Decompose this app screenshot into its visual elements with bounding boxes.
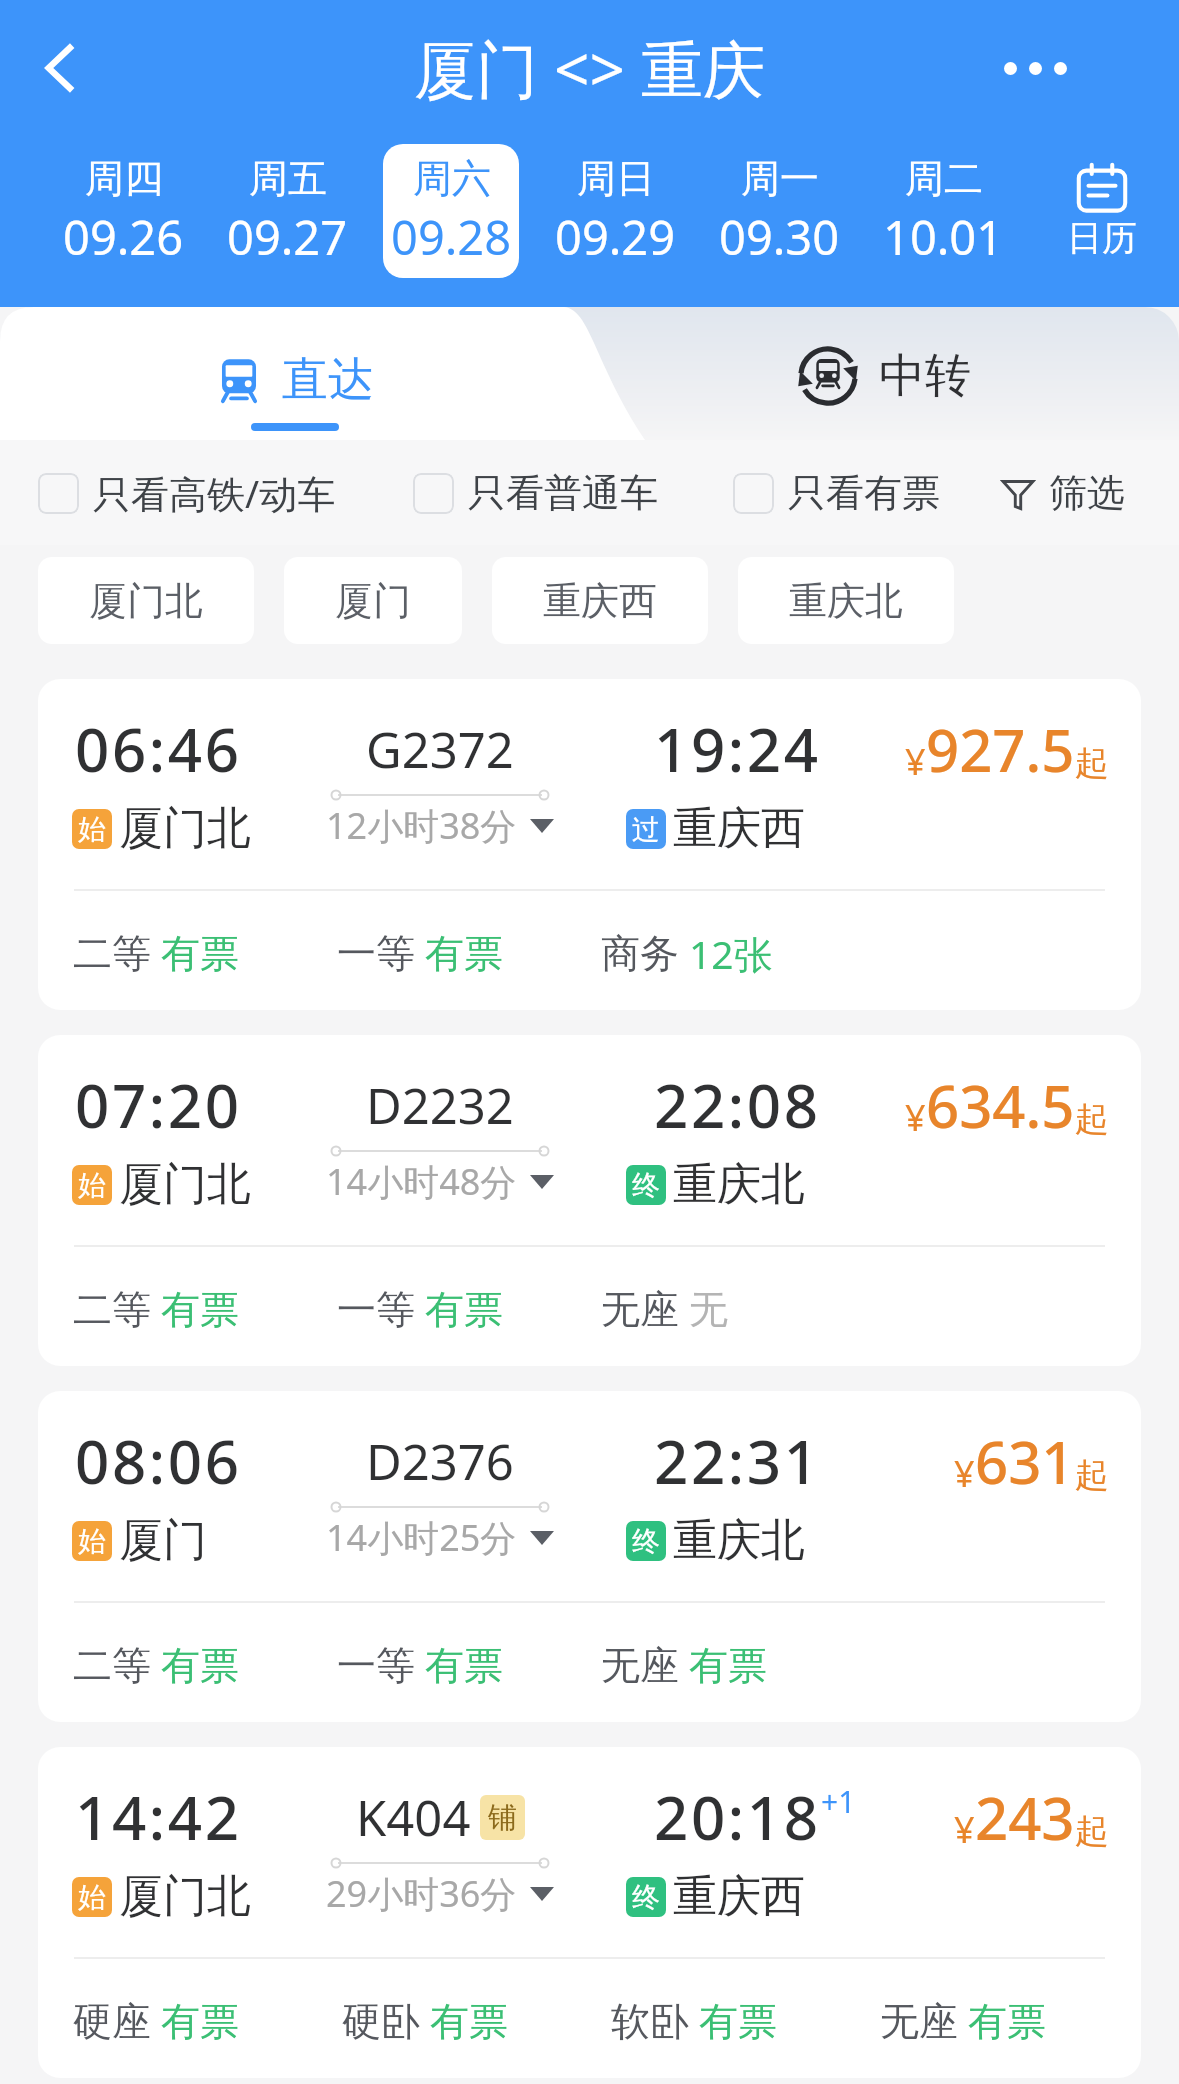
button[interactable]: 重庆北 [738, 557, 954, 644]
staticText: 始 [78, 1880, 106, 1915]
staticText: 过 [632, 812, 660, 847]
staticText: 12小时38分 [326, 801, 517, 850]
button[interactable]: 只看有票 [733, 469, 940, 517]
button[interactable]: 直达 [0, 307, 589, 440]
staticText: 14:42 [75, 1776, 242, 1858]
staticText: 有票 [968, 1997, 1046, 2046]
staticText: 有票 [161, 1641, 239, 1690]
staticText: 有票 [699, 1997, 777, 2046]
staticText: 只看有票 [788, 469, 940, 517]
staticText: ¥ [905, 737, 926, 786]
staticText: 二等 [73, 1641, 151, 1690]
staticText: 有票 [161, 1997, 239, 2046]
button[interactable]: 07:20 [38, 1035, 1141, 1366]
staticText: 重庆西 [673, 1869, 805, 1924]
staticText: 周四 [85, 154, 163, 203]
button[interactable]: 周五 [219, 144, 355, 278]
button[interactable]: 只看普通车 [413, 469, 658, 517]
staticText: 09.29 [555, 205, 676, 269]
staticText: 重庆北 [789, 577, 903, 625]
staticText: K404 [356, 1784, 471, 1851]
staticText: 29小时36分 [326, 1869, 517, 1918]
button[interactable]: 中转 [589, 307, 1179, 440]
staticText: 周二 [905, 154, 983, 203]
staticText: 周五 [249, 154, 327, 203]
button[interactable]: 14:42 [38, 1747, 1141, 2078]
staticText: 筛选 [1049, 469, 1125, 517]
button[interactable]: 周四 [55, 144, 191, 278]
button[interactable]: 厦门北 [38, 557, 254, 644]
staticText: 厦门北 [119, 801, 251, 856]
staticText: 无座 [880, 1997, 958, 2046]
staticText: 有票 [425, 1641, 503, 1690]
staticText: 只看高铁/动车 [93, 467, 336, 519]
staticText: 终 [632, 1168, 660, 1203]
staticText: 硬座 [73, 1997, 151, 2046]
staticText: 起 [1075, 1810, 1109, 1853]
staticText: 终 [632, 1880, 660, 1915]
staticText: D2376 [366, 1428, 514, 1495]
staticText: 14小时25分 [326, 1513, 517, 1562]
staticText: 始 [78, 812, 106, 847]
staticText: 周一 [741, 154, 819, 203]
staticText: 重庆北 [673, 1157, 805, 1212]
staticText: 无 [689, 1285, 728, 1334]
staticText: 有票 [161, 1285, 239, 1334]
staticText: 927.5 [926, 710, 1075, 789]
staticText: 重庆西 [543, 577, 657, 625]
button[interactable]: 周一 [711, 144, 847, 278]
staticText: 有票 [161, 929, 239, 978]
staticText: 有票 [430, 1997, 508, 2046]
staticText: 08:06 [75, 1420, 242, 1502]
staticText: 09.30 [719, 205, 840, 269]
staticText: 有票 [425, 929, 503, 978]
button[interactable]: 周二 [875, 144, 1011, 278]
button[interactable]: Open calendar [1025, 136, 1179, 286]
staticText: 软卧 [611, 1997, 689, 2046]
staticText: 始 [78, 1524, 106, 1559]
staticText: +1 [821, 1781, 856, 1822]
staticText: 铺 [488, 1799, 517, 1836]
staticText: 无座 [601, 1641, 679, 1690]
staticText: 06:46 [75, 708, 242, 790]
staticText: 终 [632, 1524, 660, 1559]
staticText: 14小时48分 [326, 1157, 517, 1206]
staticText: 硬卧 [342, 1997, 420, 2046]
staticText: 厦门北 [89, 577, 203, 625]
button[interactable]: Back [17, 24, 105, 112]
staticText: 二等 [73, 929, 151, 978]
staticText: 243 [975, 1778, 1075, 1857]
staticText: ¥ [905, 1093, 926, 1142]
staticText: 只看普通车 [468, 469, 658, 517]
staticText: 二等 [73, 1285, 151, 1334]
button[interactable]: 周日 [547, 144, 683, 278]
staticText: 周日 [577, 154, 655, 203]
staticText: 20:18 [654, 1776, 821, 1858]
button[interactable]: 只看高铁/动车 [38, 467, 336, 519]
button[interactable]: 周六 [383, 144, 519, 278]
button[interactable]: 厦门 [284, 557, 462, 644]
staticText: 19:24 [654, 708, 821, 790]
staticText: G2372 [366, 716, 514, 783]
staticText: 634.5 [926, 1066, 1075, 1145]
button[interactable]: 06:46 [38, 679, 1141, 1010]
staticText: 重庆西 [673, 801, 805, 856]
button[interactable]: 重庆西 [492, 557, 708, 644]
staticText: D2232 [366, 1072, 514, 1139]
staticText: 09.26 [63, 205, 184, 269]
staticText: 厦门 <> 重庆 [414, 26, 766, 111]
staticText: 起 [1075, 1454, 1109, 1497]
staticText: 厦门 [119, 1513, 207, 1568]
staticText: 12张 [689, 927, 773, 980]
staticText: 一等 [337, 929, 415, 978]
staticText: 始 [78, 1168, 106, 1203]
staticText: 无座 [601, 1285, 679, 1334]
staticText: 厦门北 [119, 1157, 251, 1212]
staticText: 631 [975, 1422, 1075, 1501]
button[interactable]: More options [991, 24, 1079, 112]
button[interactable]: 筛选 [1001, 469, 1125, 517]
staticText: 中转 [879, 347, 971, 405]
button[interactable]: 08:06 [38, 1391, 1141, 1722]
staticText: 07:20 [75, 1064, 242, 1146]
staticText: ¥ [954, 1805, 975, 1854]
